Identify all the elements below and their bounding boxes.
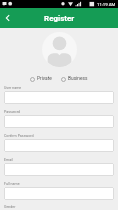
staticText: Email — [4, 158, 13, 162]
button[interactable] — [4, 187, 114, 200]
staticText: User name — [4, 86, 22, 90]
button[interactable] — [4, 139, 114, 152]
staticText: Full name — [4, 182, 20, 186]
button[interactable] — [4, 163, 114, 176]
staticText: Business — [68, 76, 88, 82]
button[interactable]: Private — [30, 76, 52, 82]
staticText: Register — [44, 14, 75, 23]
staticText: Private — [37, 76, 52, 82]
button[interactable]: Business — [61, 76, 88, 82]
staticText: Confirm Password — [4, 134, 34, 138]
staticText: 11:19 AM — [97, 2, 116, 7]
button[interactable] — [4, 91, 114, 104]
button[interactable] — [4, 115, 114, 128]
button[interactable]: Back — [0, 10, 16, 26]
button[interactable]: Profile photo — [42, 32, 77, 67]
staticText: Password — [4, 110, 20, 114]
staticText: Gender — [4, 205, 16, 209]
